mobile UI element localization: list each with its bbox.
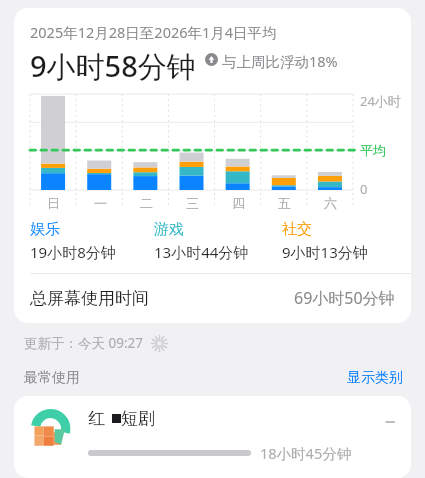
- staticText: 9小时58分钟: [30, 46, 196, 86]
- staticText: 短剧: [121, 408, 155, 429]
- staticText: 2025年12月28日至2026年1月4日平均: [30, 22, 277, 42]
- button[interactable]: 红: [14, 396, 411, 463]
- staticText: 娱乐: [30, 220, 60, 239]
- staticText: 13小时44分钟: [154, 242, 249, 262]
- button[interactable]: 娱乐: [30, 220, 154, 262]
- staticText: 24小时: [360, 92, 401, 110]
- button[interactable]: 游戏: [154, 220, 282, 262]
- other: 上升: [204, 53, 219, 66]
- staticText: 19小时8分钟: [30, 242, 116, 262]
- staticText: 0: [360, 180, 368, 198]
- staticText: 最常使用: [24, 369, 80, 387]
- staticText: 18小时45分钟: [260, 443, 352, 463]
- button[interactable]: 总屏幕使用时间: [14, 274, 411, 323]
- staticText: 红: [88, 408, 105, 429]
- staticText: 五: [278, 195, 291, 211]
- staticText: 社交: [282, 220, 312, 239]
- staticText: 游戏: [154, 220, 184, 239]
- staticText: 三: [186, 195, 199, 211]
- staticText: 四: [232, 195, 245, 211]
- staticText: 69小时50分钟: [294, 287, 395, 309]
- staticText: 总屏幕使用时间: [30, 288, 149, 309]
- staticText: 六: [324, 195, 337, 211]
- staticText: 显示类别: [347, 369, 403, 387]
- staticText: 9小时13分钟: [282, 242, 368, 262]
- staticText: 二: [140, 195, 153, 211]
- button[interactable]: 社交: [282, 220, 397, 262]
- button[interactable]: 显示类别: [347, 369, 403, 387]
- staticText: 更新于：今天 09:27: [24, 334, 144, 352]
- staticText: 与上周比浮动18%: [222, 51, 338, 71]
- staticText: 日: [47, 195, 60, 211]
- staticText: 一: [94, 195, 107, 211]
- staticText: 平均: [360, 142, 386, 158]
